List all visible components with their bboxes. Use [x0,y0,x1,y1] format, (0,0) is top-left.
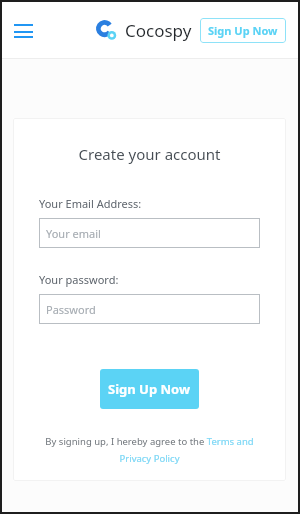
staticText: Sign Up Now [108,380,191,398]
button[interactable]: Password [39,294,260,324]
staticText: Sign Up Now [208,23,278,38]
staticText: Your password: [39,272,119,287]
button[interactable]: Your email [39,218,260,248]
button[interactable]: Sign Up Now [100,369,199,409]
button[interactable]: Sign Up Now [200,18,286,43]
staticText: Create your account [39,144,260,164]
staticText: Password [46,302,96,317]
staticText: Cocospy [125,19,192,42]
button[interactable]: By signing up, I hereby agree to the Ter… [39,435,260,465]
staticText: By signing up, I hereby agree to the Ter… [39,435,260,465]
staticText: Your Email Address: [39,196,142,211]
button[interactable]: Menu [7,15,39,47]
staticText: Your email [46,226,101,241]
